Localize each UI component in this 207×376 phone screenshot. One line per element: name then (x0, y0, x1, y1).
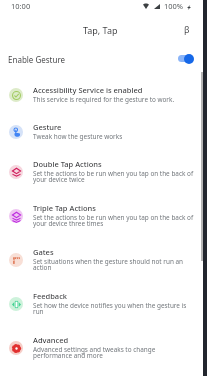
button[interactable]: Feedback (0, 281, 199, 326)
staticText: Advanced settings and tweaks to change p… (33, 345, 195, 360)
button[interactable]: Beta (176, 15, 200, 39)
staticText: β (184, 23, 190, 35)
staticText: Gesture (33, 122, 62, 132)
staticText: Gates (33, 247, 54, 257)
staticText: 100% (164, 1, 184, 11)
staticText: Set situations when the gesture should n… (33, 257, 195, 272)
button[interactable]: Double Tap Actions (0, 149, 199, 194)
staticText: 10:00 (11, 1, 31, 11)
staticText: Set the actions to be run when you tap o… (33, 169, 195, 184)
staticText: Tweak how the gesture works (33, 132, 123, 141)
button[interactable]: Gates (0, 237, 199, 282)
button[interactable]: Advanced (0, 325, 199, 370)
button[interactable]: Triple Tap Actions (0, 193, 199, 238)
staticText: Triple Tap Actions (33, 203, 96, 213)
button[interactable]: Accessibility Service is enabled (0, 75, 199, 114)
button[interactable]: Enable Gesture (0, 46, 207, 70)
staticText: Double Tap Actions (33, 159, 102, 169)
staticText: Accessibility Service is enabled (33, 85, 143, 95)
staticText: Advanced (33, 335, 69, 345)
staticText: Enable Gesture (8, 54, 66, 65)
button[interactable]: Gesture (0, 112, 199, 151)
staticText: This service is required for the gesture… (33, 95, 175, 104)
staticText: Feedback (33, 291, 68, 301)
staticText: Tap, Tap (83, 24, 118, 36)
staticText: Set the actions to be run when you tap o… (33, 213, 195, 228)
staticText: Set how the device notifies you when the… (33, 301, 195, 316)
